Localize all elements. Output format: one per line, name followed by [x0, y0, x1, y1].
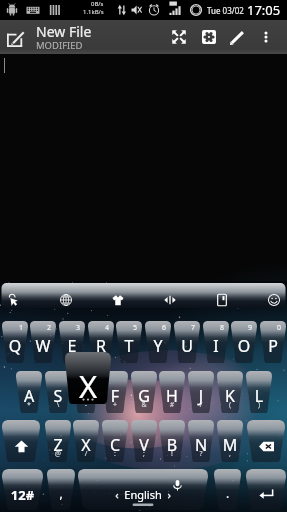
button[interactable]: Languages	[50, 283, 82, 308]
staticText: *	[16, 400, 42, 410]
staticText: )	[246, 400, 272, 410]
button[interactable]: Edit	[223, 20, 252, 54]
button[interactable]: A	[16, 371, 42, 413]
staticText: D	[73, 385, 99, 407]
button[interactable]: W	[30, 321, 56, 363]
button[interactable]: Q	[2, 321, 28, 363]
button[interactable]: Move cursor	[154, 283, 186, 308]
staticText: 8	[220, 323, 225, 333]
button[interactable]: .	[214, 469, 241, 510]
button[interactable]: O	[231, 321, 257, 363]
staticText: /	[73, 449, 99, 459]
button[interactable]: K	[217, 371, 243, 413]
button[interactable]: Enter	[246, 469, 286, 510]
button[interactable]: G	[131, 371, 157, 413]
staticText: X	[65, 365, 111, 407]
button[interactable]: Y	[145, 321, 171, 363]
staticText: ;	[131, 449, 157, 459]
staticText: R	[88, 335, 114, 357]
staticText: T	[116, 335, 142, 357]
staticText: 2	[47, 323, 52, 333]
staticText: Tue 03/02	[207, 5, 244, 16]
staticText: \	[45, 400, 71, 410]
staticText: J	[188, 385, 214, 407]
staticText: (	[217, 400, 243, 410]
button[interactable]: F	[102, 371, 128, 413]
staticText: V	[131, 434, 157, 456]
button[interactable]: L	[246, 371, 272, 413]
staticText: G	[131, 385, 157, 407]
staticText: ?	[188, 449, 214, 459]
button[interactable]: Fullscreen	[164, 20, 194, 54]
staticText: New File	[36, 22, 92, 41]
staticText: ‹ English ›	[78, 487, 208, 502]
button[interactable]: ,	[47, 469, 75, 510]
staticText: P	[260, 335, 286, 357]
staticText: 0B/s	[91, 0, 104, 8]
button[interactable]: U	[174, 321, 200, 363]
staticText: 7	[191, 323, 196, 333]
button[interactable]: P	[260, 321, 286, 363]
staticText: N	[188, 434, 214, 456]
staticText: O	[231, 335, 257, 357]
staticText: W	[30, 335, 56, 357]
staticText: 0	[277, 323, 282, 333]
staticText: -	[73, 400, 99, 410]
staticText: 4	[105, 323, 110, 333]
button[interactable]: 12#	[2, 469, 43, 510]
button[interactable]: More options	[252, 20, 279, 54]
staticText: B	[159, 434, 185, 456]
staticText: K	[217, 385, 243, 407]
button[interactable]: N	[188, 420, 214, 462]
button[interactable]: X	[73, 420, 99, 462]
staticText: Z	[45, 434, 71, 456]
staticText: A	[16, 385, 42, 407]
button[interactable]: Z	[45, 420, 71, 462]
staticText: :	[102, 449, 128, 459]
button[interactable]: V	[131, 420, 157, 462]
button[interactable]: Space, English	[78, 469, 208, 510]
button[interactable]: R	[88, 321, 114, 363]
staticText: MODIFIED	[36, 39, 83, 52]
staticText: &	[131, 400, 157, 410]
button[interactable]: B	[159, 420, 185, 462]
staticText: H	[159, 385, 185, 407]
staticText: ,	[47, 485, 75, 501]
staticText: 1.1kB/s	[83, 8, 104, 16]
button[interactable]: C	[102, 420, 128, 462]
staticText: 5	[133, 323, 138, 333]
button[interactable]: D	[73, 371, 99, 413]
button[interactable]: Clipboard	[206, 283, 238, 308]
staticText: X	[73, 434, 99, 456]
button[interactable]: I	[203, 321, 229, 363]
staticText: U	[174, 335, 200, 357]
button[interactable]: E	[59, 321, 85, 363]
button[interactable]: Backspace	[247, 420, 285, 462]
button[interactable]: H	[159, 371, 185, 413]
button[interactable]: Shift	[2, 420, 40, 462]
staticText: 9	[248, 323, 253, 333]
button[interactable]: Emoji	[258, 283, 287, 308]
button[interactable]: J	[188, 371, 214, 413]
staticText: Q	[2, 335, 28, 357]
button[interactable]: Theme	[102, 283, 134, 308]
button[interactable]: M	[217, 420, 243, 462]
staticText: F	[102, 385, 128, 407]
staticText: !	[159, 449, 185, 459]
staticText: Y	[145, 335, 171, 357]
staticText: L	[246, 385, 272, 407]
staticText: 1	[19, 323, 24, 333]
staticText: 3	[76, 323, 81, 333]
staticText: I	[203, 335, 229, 357]
staticText: E	[59, 335, 85, 357]
staticText: .	[214, 485, 241, 501]
staticText: +	[102, 400, 128, 410]
staticText: 6	[162, 323, 167, 333]
button[interactable]: T	[116, 321, 142, 363]
button[interactable]: New file	[0, 20, 33, 54]
button[interactable]: Input method	[0, 283, 30, 308]
button[interactable]: S	[45, 371, 71, 413]
button[interactable]: Settings	[194, 20, 223, 54]
staticText: C	[102, 434, 128, 456]
staticText: ,	[217, 449, 243, 459]
